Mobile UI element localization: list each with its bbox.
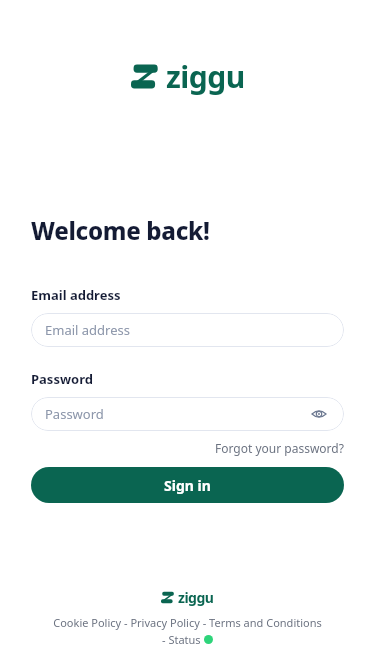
staticText: Cookie Policy - Privacy Policy - Terms a… <box>53 615 322 630</box>
button[interactable]: Password <box>31 397 344 431</box>
staticText: Sign in <box>164 476 211 495</box>
staticText: Password <box>31 370 93 388</box>
button[interactable]: Sign in <box>31 467 344 503</box>
staticText: ziggu <box>166 56 245 97</box>
button[interactable]: Cookie Policy - Privacy Policy - Terms a… <box>53 615 322 630</box>
button[interactable]: Show password <box>308 403 330 425</box>
staticText: Password <box>45 405 104 423</box>
staticText: Welcome back! <box>31 214 210 247</box>
button[interactable]: - Status <box>162 632 213 647</box>
staticText: - Status <box>162 632 204 647</box>
staticText: ziggu <box>178 588 214 607</box>
staticText: Email address <box>31 286 121 304</box>
staticText: Forgot your password? <box>215 440 344 456</box>
button[interactable]: Forgot your password? <box>215 440 344 456</box>
staticText: Email address <box>45 321 130 339</box>
button[interactable]: Email address <box>31 313 344 347</box>
